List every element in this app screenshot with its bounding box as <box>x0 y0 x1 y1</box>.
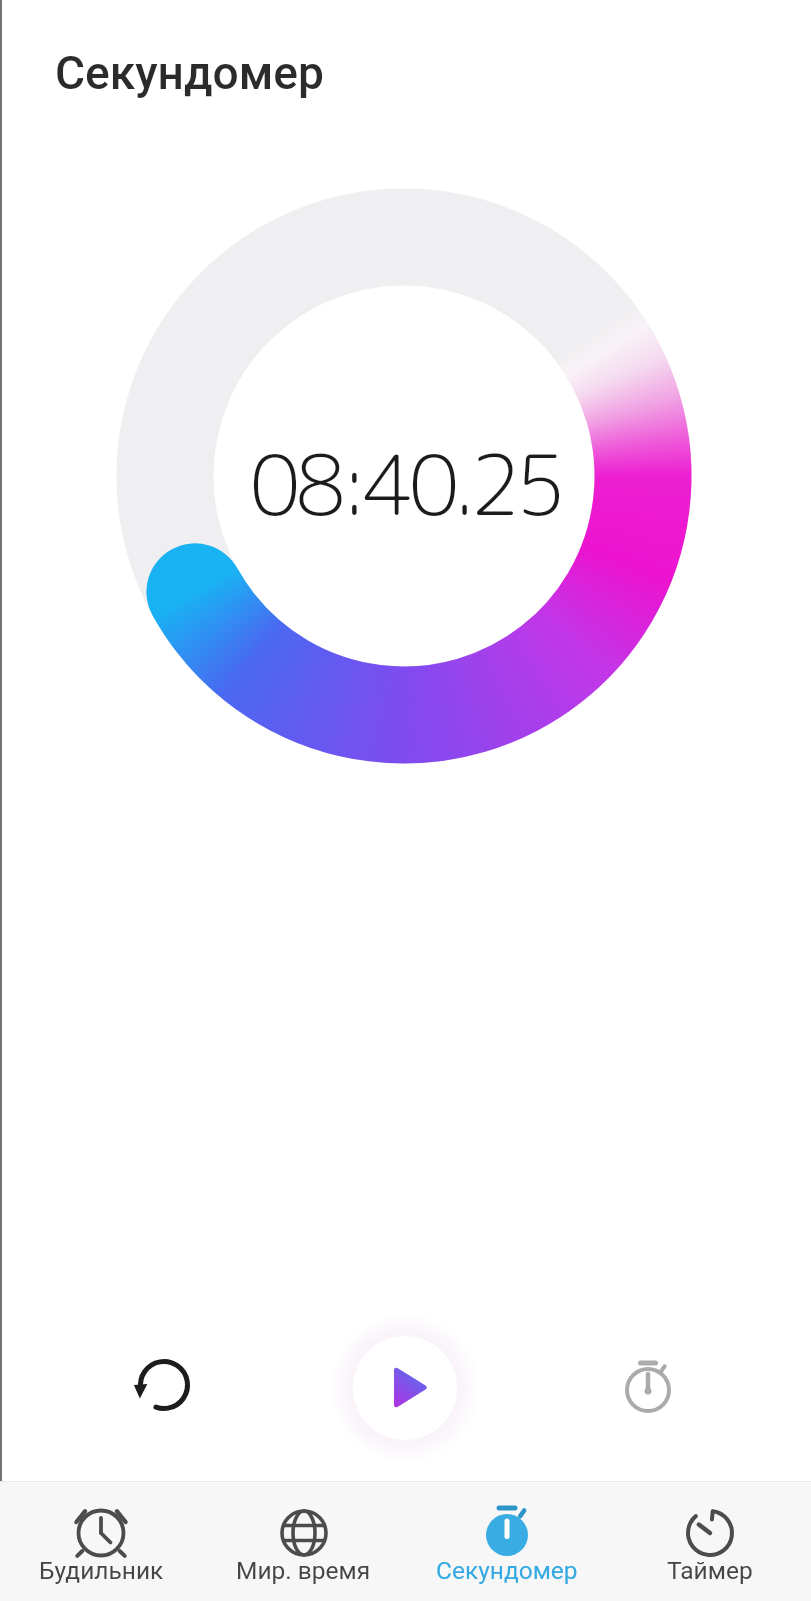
button[interactable]: Мир. время <box>202 1481 405 1601</box>
staticText: Мир. время <box>236 1556 371 1585</box>
button[interactable] <box>124 1345 204 1425</box>
button[interactable]: Секундомер <box>405 1481 608 1601</box>
button[interactable] <box>608 1349 688 1429</box>
staticText: 08:40.25 <box>250 427 562 541</box>
button[interactable] <box>330 1313 480 1463</box>
button[interactable]: Будильник <box>0 1481 202 1601</box>
button[interactable]: Таймер <box>608 1481 811 1601</box>
staticText: Таймер <box>667 1556 753 1585</box>
staticText: Будильник <box>39 1556 164 1585</box>
staticText: Секундомер <box>436 1556 578 1585</box>
staticText: Секундомер <box>55 46 324 100</box>
